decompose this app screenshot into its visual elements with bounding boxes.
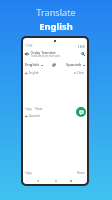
staticText: Today Translate <box>31 50 56 54</box>
staticText: Clear <box>77 71 85 75</box>
button[interactable]: Paste <box>35 107 43 111</box>
button[interactable]: Copy <box>25 171 32 175</box>
staticText: Spanish <box>29 114 40 118</box>
button[interactable]: Swap languages <box>52 63 56 67</box>
staticText: English <box>25 62 40 68</box>
other: Back <box>25 52 29 56</box>
button[interactable]: English <box>25 71 39 75</box>
staticText: 17:05 <box>25 44 33 48</box>
staticText: Translate <box>36 6 76 19</box>
button[interactable]: Spanish <box>25 114 40 118</box>
button[interactable]: Clear <box>74 71 85 75</box>
button[interactable]: Back <box>25 50 85 57</box>
button[interactable]: Back <box>37 180 39 182</box>
staticText: Traducción de mensajes <box>31 54 61 57</box>
staticText: Spanish <box>66 62 82 68</box>
button[interactable]: Copy <box>25 107 32 111</box>
button[interactable]: Share <box>77 171 85 175</box>
other: Search <box>81 52 85 56</box>
staticText: English <box>39 20 73 33</box>
button[interactable]: Spanish <box>66 62 85 68</box>
staticText: English <box>29 71 39 75</box>
button[interactable]: English <box>25 62 43 68</box>
button[interactable]: Translate <box>76 107 86 117</box>
